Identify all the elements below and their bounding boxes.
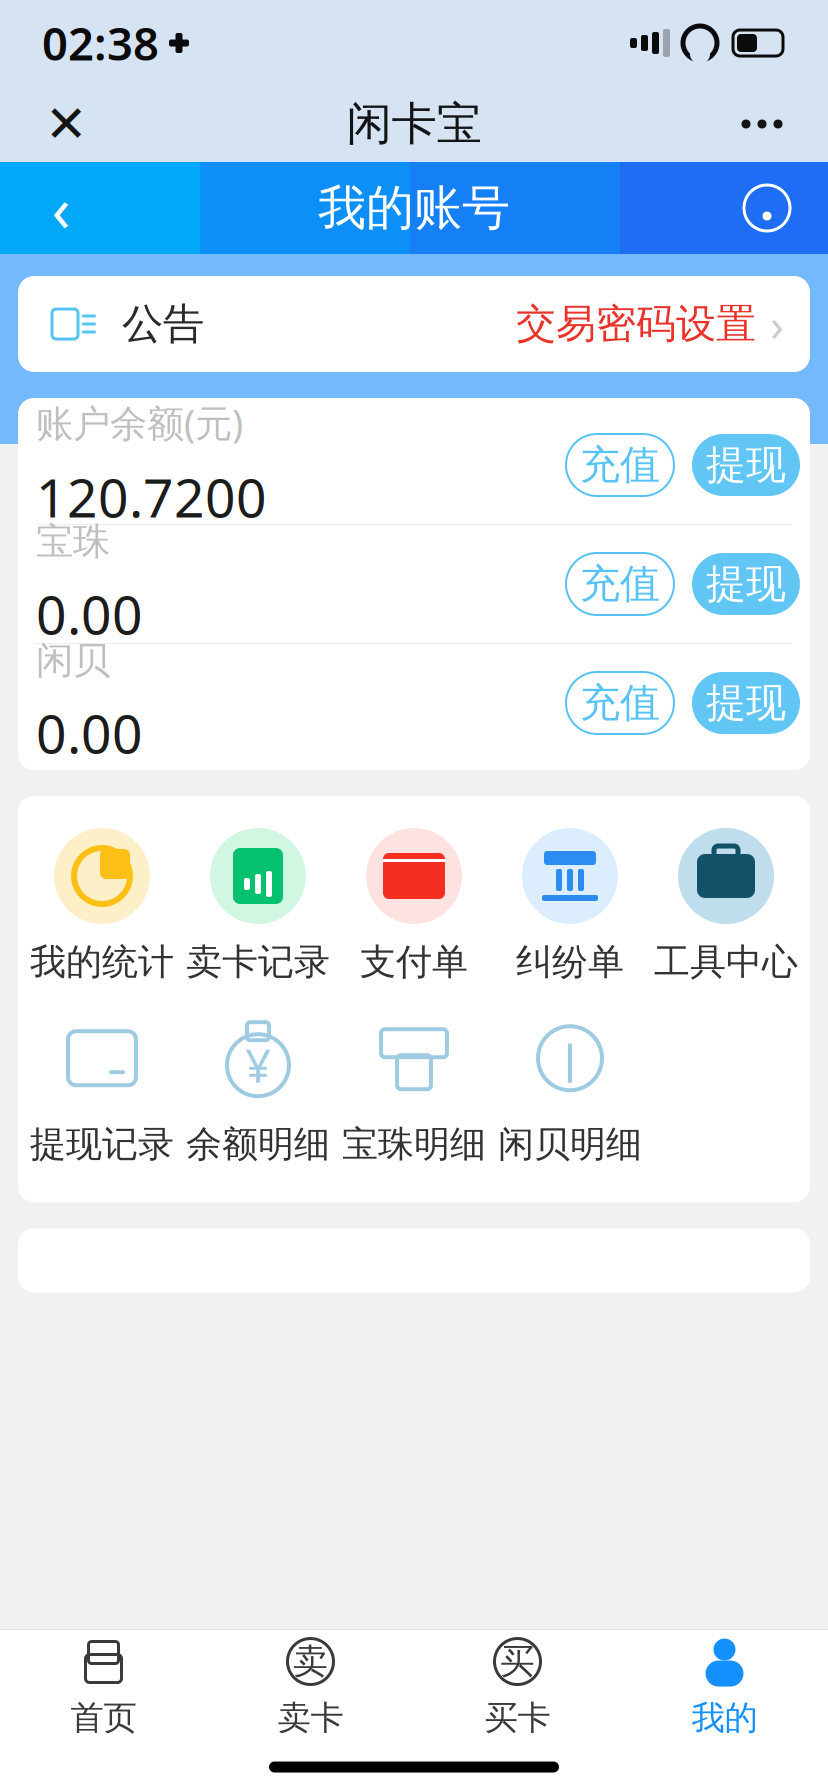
staticText: 卖卡记录 [186, 940, 330, 984]
staticText: 账户余额(元) [36, 398, 243, 447]
staticText: 宝珠明细 [342, 1122, 486, 1166]
staticText: 提现 [706, 678, 786, 727]
staticText: 我的账号 [318, 178, 510, 237]
staticText: 闲卡宝 [346, 96, 481, 152]
button[interactable]: 工具中心 [648, 822, 804, 990]
staticText: 我的统计 [30, 940, 174, 984]
staticText: ¥ [245, 1035, 271, 1095]
staticText: 买卡 [484, 1697, 550, 1738]
button[interactable]: 卖卡记录 [180, 822, 336, 990]
staticText: ‹ [51, 167, 70, 249]
button[interactable]: 闲贝明细 [492, 1004, 648, 1172]
button[interactable]: Close [30, 88, 102, 160]
button[interactable]: 充值 [566, 672, 674, 734]
button[interactable]: Customer service [728, 169, 806, 247]
staticText: 02:38 [42, 13, 159, 73]
button[interactable]: 提现 [692, 672, 800, 734]
staticText: 宝珠 [36, 519, 110, 565]
staticText: 交易密码设置 [516, 299, 756, 348]
staticText: 充值 [580, 678, 660, 727]
staticText: 纠纷单 [516, 940, 624, 984]
staticText: 支付单 [360, 940, 468, 984]
button[interactable]: Back [22, 169, 100, 247]
staticText: 提现 [706, 440, 786, 489]
staticText: 卖 [293, 1640, 328, 1683]
staticText: 我的 [691, 1697, 757, 1738]
staticText: 首页 [70, 1697, 136, 1738]
button[interactable]: 充值 [566, 553, 674, 615]
staticText: 0.00 [36, 697, 143, 768]
staticText: 余额明细 [186, 1122, 330, 1166]
staticText: 工具中心 [654, 940, 798, 984]
button[interactable]: 买 [414, 1630, 621, 1742]
staticText: 卖卡 [277, 1697, 343, 1738]
button[interactable]: 提现 [692, 553, 800, 615]
button[interactable]: 我的 [621, 1630, 828, 1742]
button[interactable]: 充值 [566, 434, 674, 496]
button[interactable]: More [726, 88, 798, 160]
staticText: ✕ [45, 95, 87, 153]
button[interactable]: ¥ [180, 1004, 336, 1172]
button[interactable]: 卖 [207, 1630, 414, 1742]
button[interactable]: 提现记录 [24, 1004, 180, 1172]
staticText: 提现 [706, 559, 786, 608]
button[interactable]: 支付单 [336, 822, 492, 990]
staticText: 充值 [580, 559, 660, 608]
staticText: › [770, 294, 784, 354]
staticText: 120.7200 [36, 461, 267, 532]
staticText: 闲贝明细 [498, 1122, 642, 1166]
staticText: 充值 [580, 440, 660, 489]
staticText: 0.00 [36, 578, 143, 649]
staticText: 闲贝 [36, 638, 110, 684]
staticText: 公告 [122, 299, 204, 349]
button[interactable]: 我的统计 [24, 822, 180, 990]
button[interactable]: 提现 [692, 434, 800, 496]
staticText: 提现记录 [30, 1122, 174, 1166]
button[interactable]: 纠纷单 [492, 822, 648, 990]
button[interactable]: 宝珠明细 [336, 1004, 492, 1172]
button[interactable]: 公告 [0, 276, 828, 372]
button[interactable]: 首页 [0, 1630, 207, 1742]
staticText: 买 [500, 1640, 535, 1683]
